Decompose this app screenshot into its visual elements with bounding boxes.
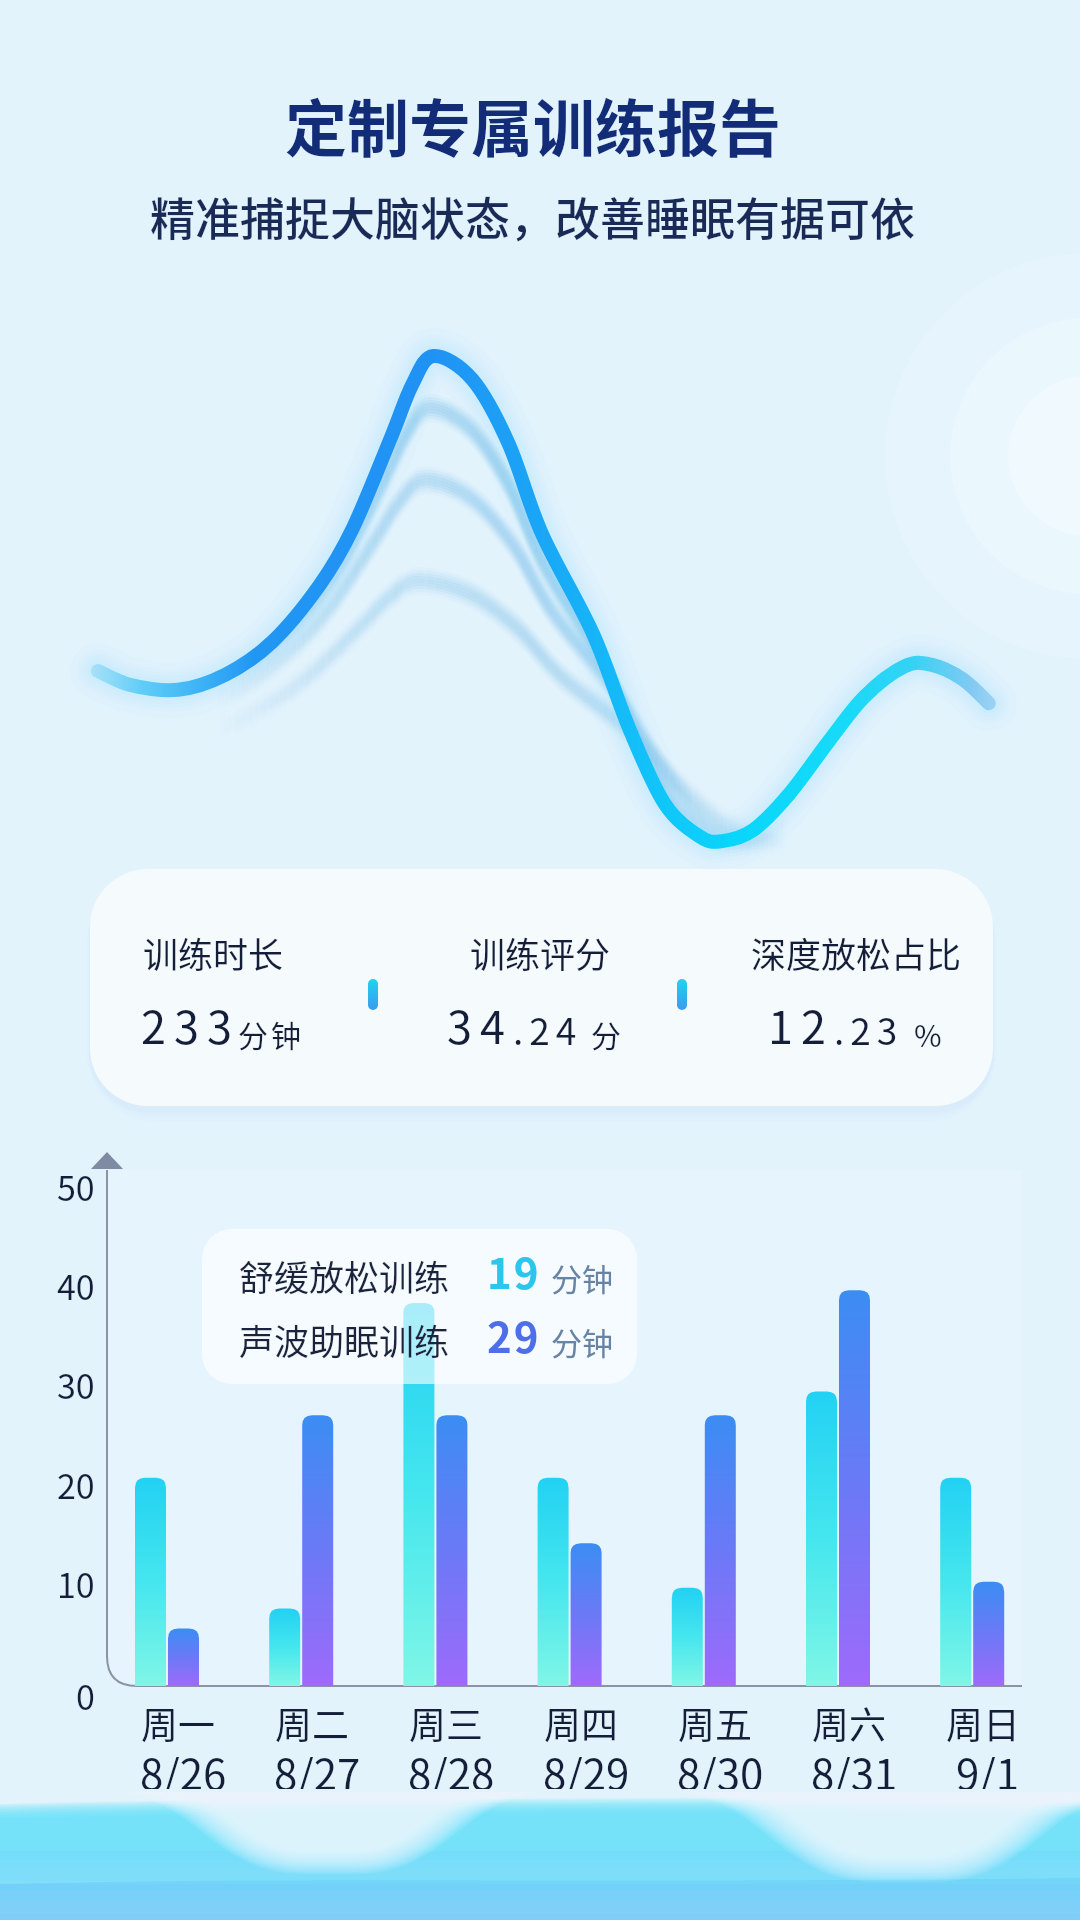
button[interactable]: 训练时长 — [90, 869, 993, 1106]
staticText: 周六 — [812, 1696, 886, 1744]
staticText: 12 — [768, 992, 834, 1057]
staticText: 8/29 — [543, 1741, 630, 1789]
button[interactable]: 舒缓放松训练 — [202, 1229, 637, 1384]
staticText: 周一 — [141, 1696, 215, 1744]
staticText: 34 — [447, 992, 513, 1057]
staticText: 周日 — [946, 1696, 1020, 1744]
staticText: 8/28 — [408, 1741, 495, 1789]
staticText: 9/1 — [956, 1741, 1020, 1789]
staticText: 8/30 — [677, 1741, 764, 1789]
staticText: 29 — [487, 1304, 541, 1365]
staticText: 周五 — [678, 1696, 752, 1744]
staticText: 分钟 — [238, 1012, 304, 1055]
staticText: 19 — [487, 1240, 541, 1301]
staticText: 周四 — [544, 1696, 618, 1744]
staticText: 深度放松占比 — [751, 927, 962, 978]
staticText: .24 — [513, 1002, 583, 1056]
staticText: 8/26 — [140, 1741, 227, 1789]
staticText: 8/27 — [274, 1741, 361, 1789]
staticText: 舒缓放松训练 — [239, 1250, 450, 1301]
staticText: 30 — [57, 1360, 95, 1409]
staticText: 20 — [57, 1460, 95, 1509]
staticText: 分钟 — [551, 1255, 613, 1300]
staticText: 训练时长 — [143, 927, 284, 978]
staticText: 8/31 — [811, 1741, 898, 1789]
staticText: % — [914, 1012, 945, 1055]
staticText: 40 — [57, 1261, 95, 1310]
staticText: 定制专属训练报告 — [285, 80, 782, 170]
staticText: .23 — [834, 1002, 904, 1056]
staticText: 声波助眠训练 — [239, 1314, 450, 1365]
staticText: 周二 — [275, 1696, 349, 1744]
staticText: 精准捕捉大脑状态，改善睡眠有据可依 — [150, 184, 916, 249]
staticText: 10 — [57, 1559, 95, 1608]
staticText: 分钟 — [551, 1319, 613, 1364]
staticText: 周三 — [409, 1696, 483, 1744]
staticText: 分 — [591, 1012, 624, 1055]
staticText: 233 — [141, 992, 240, 1057]
staticText: 训练评分 — [470, 927, 611, 978]
staticText: 0 — [76, 1671, 95, 1720]
staticText: 50 — [57, 1162, 95, 1211]
